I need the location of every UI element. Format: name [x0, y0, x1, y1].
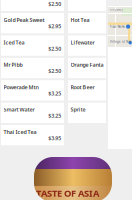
- staticText: $3.95: [48, 135, 61, 142]
- staticText: Powerade Mtn: [4, 84, 39, 91]
- staticText: $2.50: [48, 0, 61, 7]
- staticText: $2.50: [48, 45, 61, 52]
- button[interactable]: Hot Tea: [68, 13, 106, 33]
- staticText: $2.50: [48, 67, 61, 75]
- staticText: Kingsway: [109, 8, 122, 11]
- staticText: Pizza Works: [109, 25, 124, 28]
- staticText: Iced Tea: [4, 39, 25, 46]
- button[interactable]: Thai Iced Tea: [1, 125, 64, 145]
- staticText: Orange Fanta: [71, 61, 104, 68]
- button[interactable]: Powerade Mtn: [1, 80, 64, 101]
- staticText: Hot Tea: [71, 16, 90, 23]
- staticText: $2.95: [48, 23, 61, 30]
- button[interactable]: Iced Tea: [1, 35, 64, 56]
- staticText: Smart Water: [4, 106, 35, 113]
- button[interactable]: Sprite: [68, 103, 106, 123]
- button[interactable]: $2.50: [1, 0, 64, 11]
- staticText: Mr Pibb: [4, 61, 23, 68]
- button[interactable]: Lifewater: [68, 35, 106, 56]
- staticText: $3.25: [48, 112, 61, 119]
- button[interactable]: Mr Pibb: [1, 58, 64, 78]
- button[interactable]: Gold Peak Sweet: [1, 13, 64, 33]
- staticText: Thai Iced Tea: [4, 128, 37, 135]
- staticText: Village at York: [110, 40, 131, 43]
- staticText: TASTE OF ASIA: [36, 187, 99, 199]
- staticText: $3.25: [48, 90, 61, 97]
- button[interactable]: Root Beer: [68, 80, 106, 101]
- button[interactable]: Smart Water: [1, 103, 64, 123]
- staticText: Sprite: [71, 106, 86, 113]
- staticText: Lifewater: [71, 39, 95, 46]
- button[interactable]: Orange Fanta: [68, 58, 106, 78]
- staticText: Gold Peak Sweet: [4, 16, 45, 23]
- staticText: Root Beer: [71, 84, 95, 91]
